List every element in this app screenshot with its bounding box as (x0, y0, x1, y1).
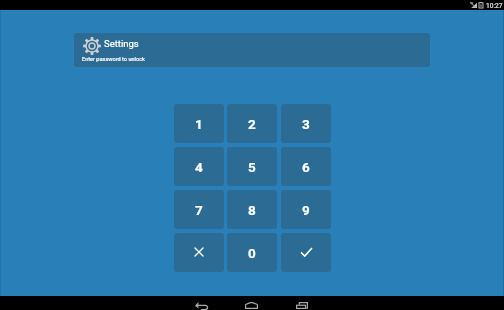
other: Clear (195, 248, 203, 256)
staticText: 6 (302, 159, 310, 175)
button[interactable]: 0 (227, 233, 277, 272)
other: Confirm (301, 248, 312, 256)
staticText: Settings (104, 38, 139, 49)
button[interactable]: Settings (74, 33, 430, 67)
staticText: 5 (248, 159, 256, 175)
staticText: 3 (302, 116, 310, 132)
button[interactable]: Confirm (281, 233, 331, 272)
button[interactable]: 7 (174, 190, 224, 229)
button[interactable]: Back (176, 296, 226, 310)
staticText: 8 (248, 202, 256, 218)
button[interactable]: Recent apps (277, 296, 327, 310)
button[interactable]: 3 (281, 104, 331, 143)
button[interactable]: 5 (227, 147, 277, 186)
staticText: 9 (302, 202, 310, 218)
button[interactable]: 1 (174, 104, 224, 143)
staticText: 10:27 (486, 2, 503, 10)
staticText: 7 (195, 202, 203, 218)
staticText: Enter password to unlock (82, 56, 145, 63)
staticText: 2 (248, 116, 256, 132)
button[interactable]: 6 (281, 147, 331, 186)
staticText: 1 (195, 116, 203, 132)
button[interactable]: Clear (174, 233, 224, 272)
button[interactable]: 8 (227, 190, 277, 229)
staticText: 0 (248, 245, 256, 261)
button[interactable]: 9 (281, 190, 331, 229)
other: Battery (479, 2, 483, 8)
other: Mobile signal (470, 2, 477, 8)
staticText: 4 (195, 159, 203, 175)
button[interactable]: 2 (227, 104, 277, 143)
button[interactable]: 4 (174, 147, 224, 186)
button[interactable]: Home (226, 296, 276, 310)
